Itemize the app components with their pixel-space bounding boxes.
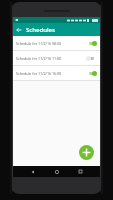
button[interactable]: Schedule for 11/2/16 16:00: [13, 66, 100, 80]
button[interactable]: Recent apps: [76, 167, 85, 176]
button[interactable]: Home: [52, 167, 61, 176]
staticText: Schedules: [26, 26, 55, 34]
staticText: Schedule for 11/2/16 08:00: [16, 41, 86, 46]
button[interactable]: Enabled: [86, 39, 97, 48]
button[interactable]: Back: [28, 167, 37, 176]
staticText: Schedule for 11/2/16 11:00: [16, 56, 86, 61]
button[interactable]: Enabled: [86, 69, 97, 78]
button[interactable]: Add schedule: [79, 145, 94, 160]
button[interactable]: Disabled: [86, 54, 97, 63]
staticText: Schedule for 11/2/16 16:00: [16, 71, 86, 76]
button[interactable]: Schedule for 11/2/16 11:00: [13, 51, 100, 65]
button[interactable]: Back: [13, 24, 24, 35]
button[interactable]: Schedule for 11/2/16 08:00: [13, 36, 100, 50]
